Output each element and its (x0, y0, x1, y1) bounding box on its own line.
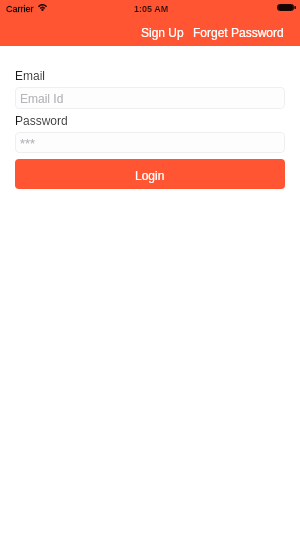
button[interactable]: Email Id (15, 87, 285, 109)
button[interactable]: Login (15, 159, 285, 189)
staticText: Login (135, 169, 165, 182)
other: Battery full (277, 4, 296, 11)
staticText: Email Id (20, 92, 64, 105)
staticText: Password (15, 114, 68, 127)
other: Wi-Fi signal (38, 4, 47, 11)
button[interactable]: Forget Password (193, 20, 284, 46)
staticText: Sign Up (141, 26, 184, 39)
staticText: *** (20, 136, 36, 151)
button[interactable]: *** (15, 132, 285, 153)
staticText: Carrier (6, 4, 34, 14)
staticText: Email (15, 69, 46, 82)
button[interactable]: Sign Up (141, 20, 184, 46)
staticText: 1:05 AM (134, 4, 169, 14)
staticText: Forget Password (193, 26, 284, 39)
